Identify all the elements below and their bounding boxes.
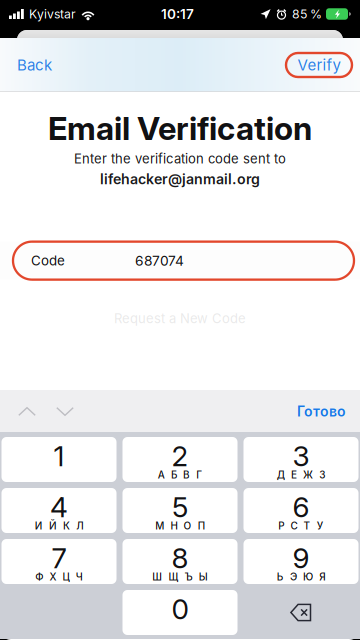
button[interactable]: Code [0, 242, 360, 280]
button[interactable]: Verify [286, 53, 360, 77]
staticText: 6 [292, 490, 309, 524]
staticText: Ь Э Ю Я [277, 571, 325, 583]
staticText: Enter the verification code sent to [74, 151, 286, 166]
staticText: 8 [171, 541, 188, 575]
button[interactable]: 6 [243, 488, 358, 533]
button[interactable]: 8 [122, 539, 237, 584]
staticText: Code [31, 253, 65, 269]
button[interactable]: 9 [243, 539, 358, 584]
staticText: 0 [171, 592, 188, 626]
staticText: 7 [51, 541, 66, 575]
staticText: 9 [292, 541, 309, 575]
button[interactable]: 2 [122, 437, 237, 482]
button[interactable]: 4 [1, 488, 116, 533]
staticText: Request a New Code [114, 311, 246, 326]
staticText: Verify [297, 56, 340, 74]
button[interactable]: 5 [122, 488, 237, 533]
staticText: 10:17 [161, 6, 194, 22]
button[interactable]: 0 [122, 590, 237, 635]
staticText: 3 [292, 439, 309, 473]
button[interactable]: Previous field [8, 391, 46, 431]
staticText: Ш Щ Ъ Ы [152, 571, 208, 583]
staticText: lifehacker@janmail.org [100, 170, 260, 188]
staticText: Email Verification [48, 109, 312, 148]
button[interactable]: Delete [243, 590, 358, 635]
button[interactable]: 1 [1, 437, 116, 482]
staticText: Kyivstar [29, 7, 76, 21]
staticText: Р С Т У [278, 520, 324, 532]
staticText: 2 [171, 439, 188, 473]
button[interactable]: 7 [1, 539, 116, 584]
staticText: Готово [297, 403, 346, 420]
staticText: Back [17, 56, 52, 74]
button[interactable]: 3 [243, 437, 358, 482]
staticText: 5 [172, 490, 188, 524]
button[interactable]: Back [0, 43, 64, 87]
staticText: 4 [50, 490, 68, 524]
button[interactable]: Next field [46, 391, 84, 431]
staticText: Ф Х Ц Ч [35, 571, 83, 583]
staticText: 687074 [135, 252, 184, 269]
staticText: 85 % [292, 7, 322, 21]
staticText: И Й К Л [35, 520, 83, 532]
button[interactable]: Готово [291, 391, 352, 431]
staticText: Д Е Ж З [277, 469, 325, 481]
staticText: 1 [53, 439, 64, 473]
staticText: М Н О П [155, 520, 205, 532]
staticText: А Б В Г [158, 469, 202, 481]
